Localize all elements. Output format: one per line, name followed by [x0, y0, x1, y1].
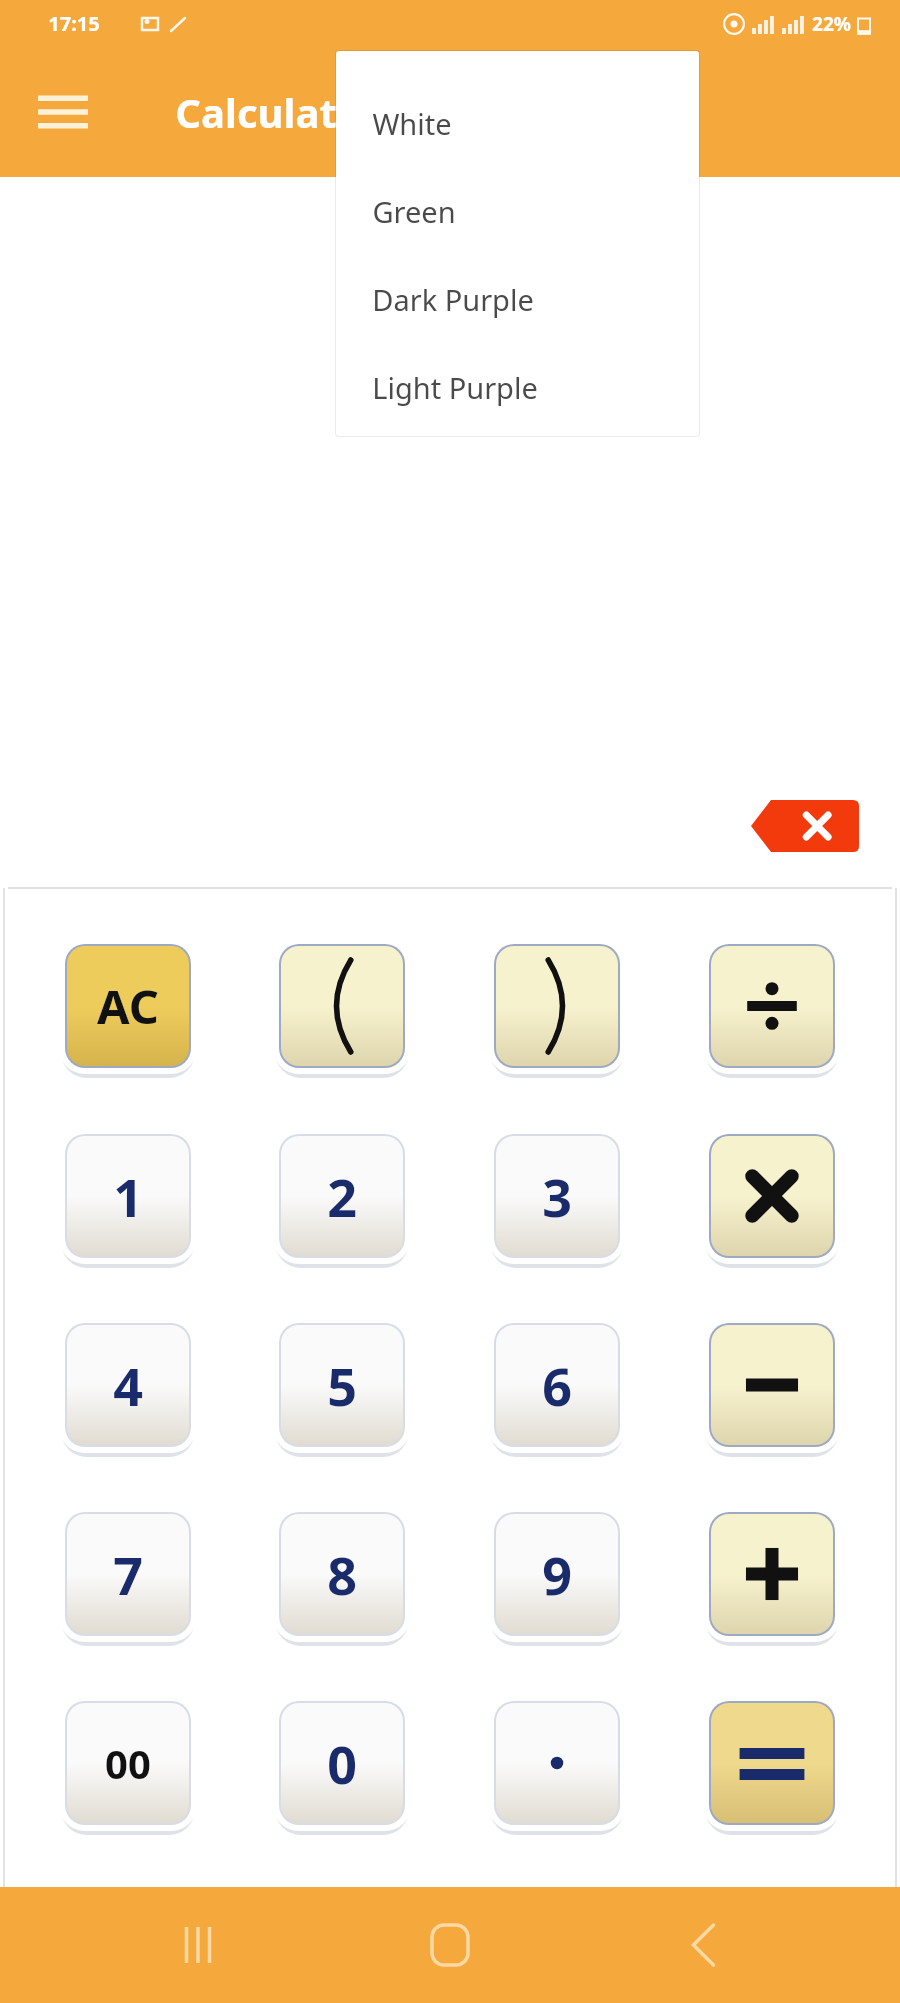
staticText: Light Purple: [372, 368, 538, 407]
button[interactable]: 6: [482, 1311, 632, 1459]
staticText: 7: [113, 1539, 143, 1610]
staticText: 2: [327, 1161, 357, 1232]
button[interactable]: Green: [336, 167, 699, 255]
staticText: 22%: [812, 11, 851, 37]
staticText: 4: [113, 1350, 143, 1421]
button[interactable]: White: [336, 79, 699, 167]
button[interactable]: [267, 932, 417, 1080]
button[interactable]: [482, 1689, 632, 1837]
staticText: 00: [105, 1736, 151, 1790]
button[interactable]: Open navigation menu: [26, 75, 100, 149]
button[interactable]: 2: [267, 1122, 417, 1270]
button[interactable]: [697, 1689, 847, 1837]
button[interactable]: 5: [267, 1311, 417, 1459]
staticText: 1: [113, 1161, 143, 1232]
staticText: Green: [372, 192, 456, 231]
button[interactable]: Recent apps: [143, 1890, 253, 2000]
button[interactable]: [482, 932, 632, 1080]
button[interactable]: Dark Purple: [336, 255, 699, 343]
button[interactable]: Light Purple: [336, 343, 699, 431]
staticText: 3: [542, 1161, 572, 1232]
button[interactable]: [697, 1122, 847, 1270]
staticText: Dark Purple: [372, 280, 534, 319]
button[interactable]: AC: [53, 932, 203, 1080]
button[interactable]: 3: [482, 1122, 632, 1270]
button[interactable]: Home: [395, 1890, 505, 2000]
button[interactable]: 7: [53, 1500, 203, 1648]
button[interactable]: [697, 1311, 847, 1459]
staticText: 6: [542, 1350, 572, 1421]
button[interactable]: 00: [53, 1689, 203, 1837]
button[interactable]: 1: [53, 1122, 203, 1270]
staticText: 8: [327, 1539, 357, 1610]
button[interactable]: [697, 932, 847, 1080]
staticText: Calculator: [175, 85, 380, 139]
button[interactable]: Backspace: [744, 795, 864, 857]
button[interactable]: 4: [53, 1311, 203, 1459]
staticText: AC: [97, 974, 159, 1038]
button[interactable]: 0: [267, 1689, 417, 1837]
button[interactable]: 8: [267, 1500, 417, 1648]
button[interactable]: [697, 1500, 847, 1648]
staticText: White: [372, 104, 452, 143]
staticText: 0: [327, 1728, 357, 1799]
button[interactable]: 9: [482, 1500, 632, 1648]
button[interactable]: Back: [648, 1890, 758, 2000]
staticText: 17:15: [48, 10, 100, 37]
staticText: 9: [542, 1539, 572, 1610]
staticText: 5: [327, 1350, 357, 1421]
